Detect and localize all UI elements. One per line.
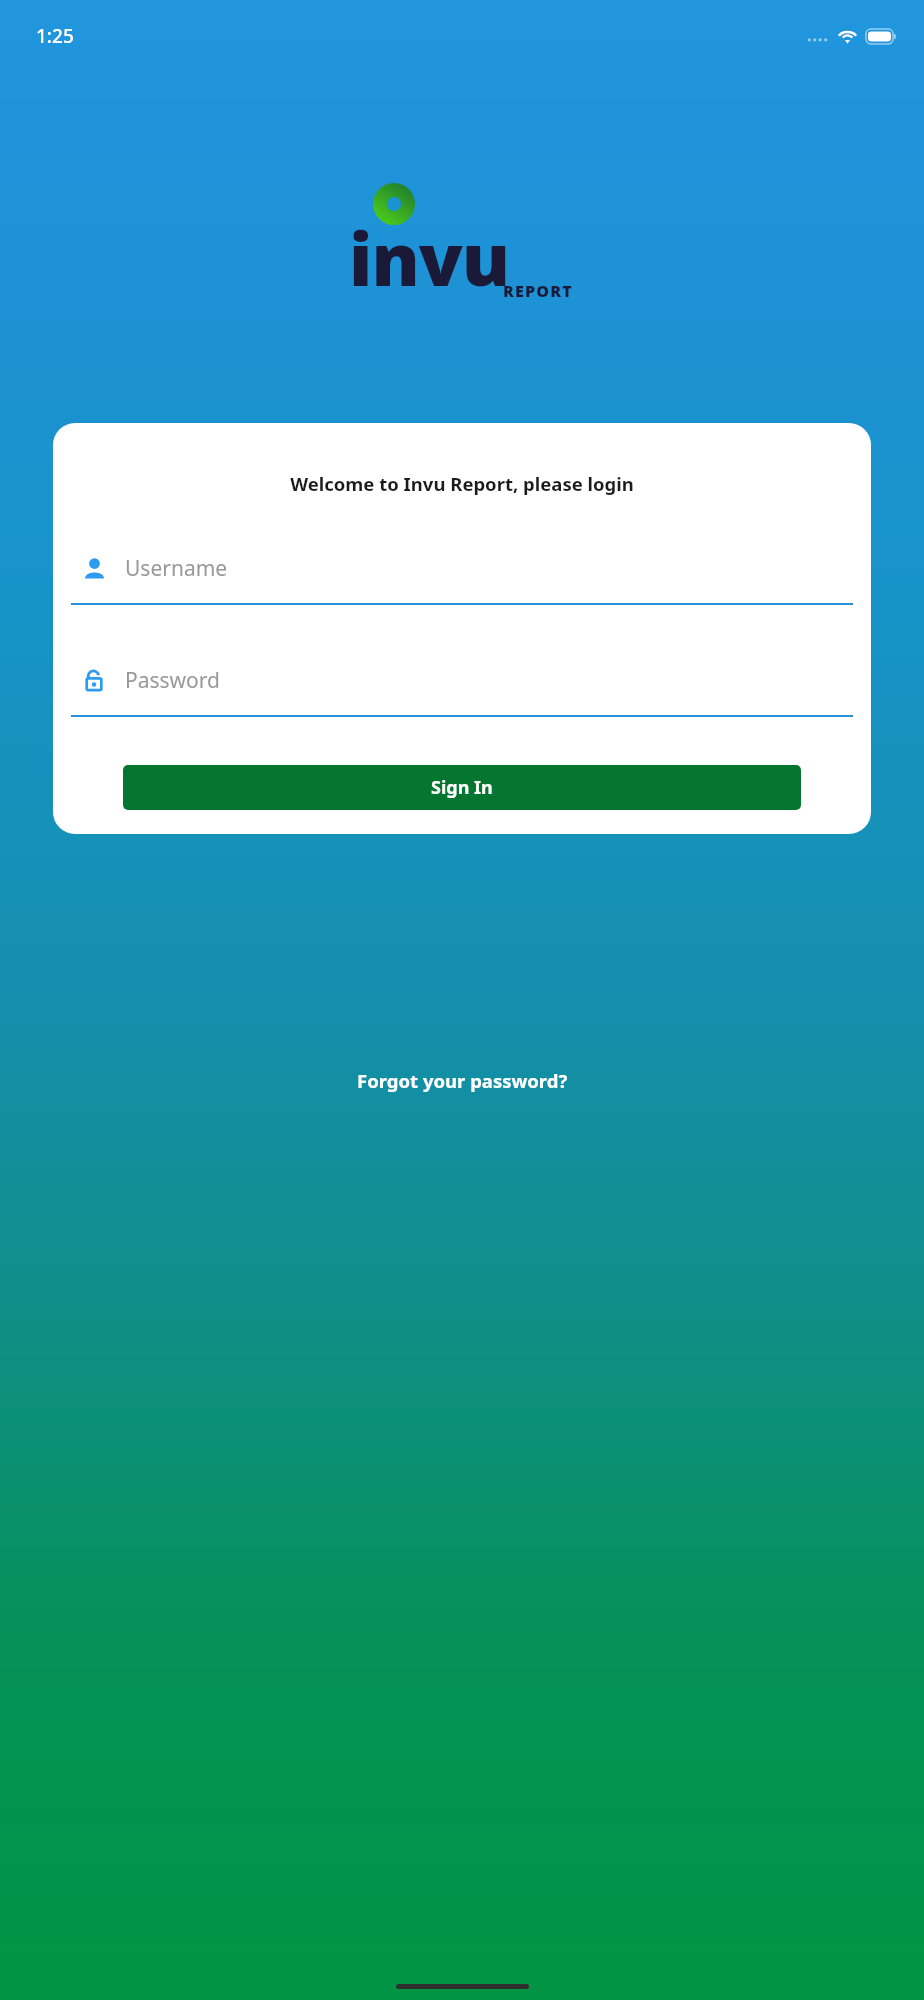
- staticText: Password: [125, 666, 220, 695]
- staticText: Forgot your password?: [357, 1068, 568, 1093]
- staticText: Sign In: [431, 775, 493, 800]
- button[interactable]: Sign In: [123, 765, 801, 810]
- staticText: invu: [349, 209, 509, 307]
- staticText: Welcome to Invu Report, please login: [53, 471, 871, 496]
- other: Username: [71, 556, 117, 581]
- other: Password: [71, 667, 117, 693]
- staticText: Username: [125, 554, 228, 583]
- button[interactable]: Forgot your password?: [345, 1062, 580, 1099]
- button[interactable]: Password: [71, 661, 853, 717]
- staticText: 1:25: [36, 23, 74, 49]
- button[interactable]: Username: [71, 549, 853, 605]
- staticText: REPORT: [503, 280, 573, 302]
